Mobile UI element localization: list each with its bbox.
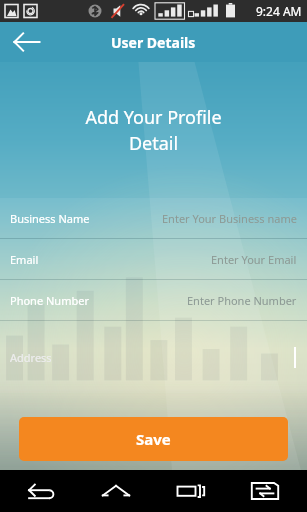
button[interactable]: Back <box>10 470 74 512</box>
button[interactable]: Back <box>0 22 54 62</box>
button[interactable]: Recent apps <box>159 470 223 512</box>
button[interactable]: Email <box>0 239 307 279</box>
button[interactable]: Save <box>19 417 288 461</box>
staticText: Enter Phone Number <box>187 293 297 308</box>
staticText: Add Your Profile Detail <box>85 105 222 155</box>
button[interactable]: Business Name <box>0 198 307 238</box>
staticText: User Details <box>111 33 196 52</box>
staticText: Save <box>136 429 171 449</box>
staticText: Business Name <box>10 211 90 226</box>
button[interactable]: Dual window <box>233 470 297 512</box>
staticText: Enter Your Email <box>211 252 297 267</box>
staticText: Email <box>10 252 39 267</box>
button[interactable]: Home <box>84 470 148 512</box>
staticText: Phone Number <box>10 293 89 308</box>
staticText: Enter Your Business name <box>162 211 297 226</box>
button[interactable]: Phone Number <box>0 280 307 320</box>
button[interactable]: Address <box>0 321 307 393</box>
staticText: Address <box>10 350 52 365</box>
staticText: 9:24 AM <box>256 3 302 19</box>
